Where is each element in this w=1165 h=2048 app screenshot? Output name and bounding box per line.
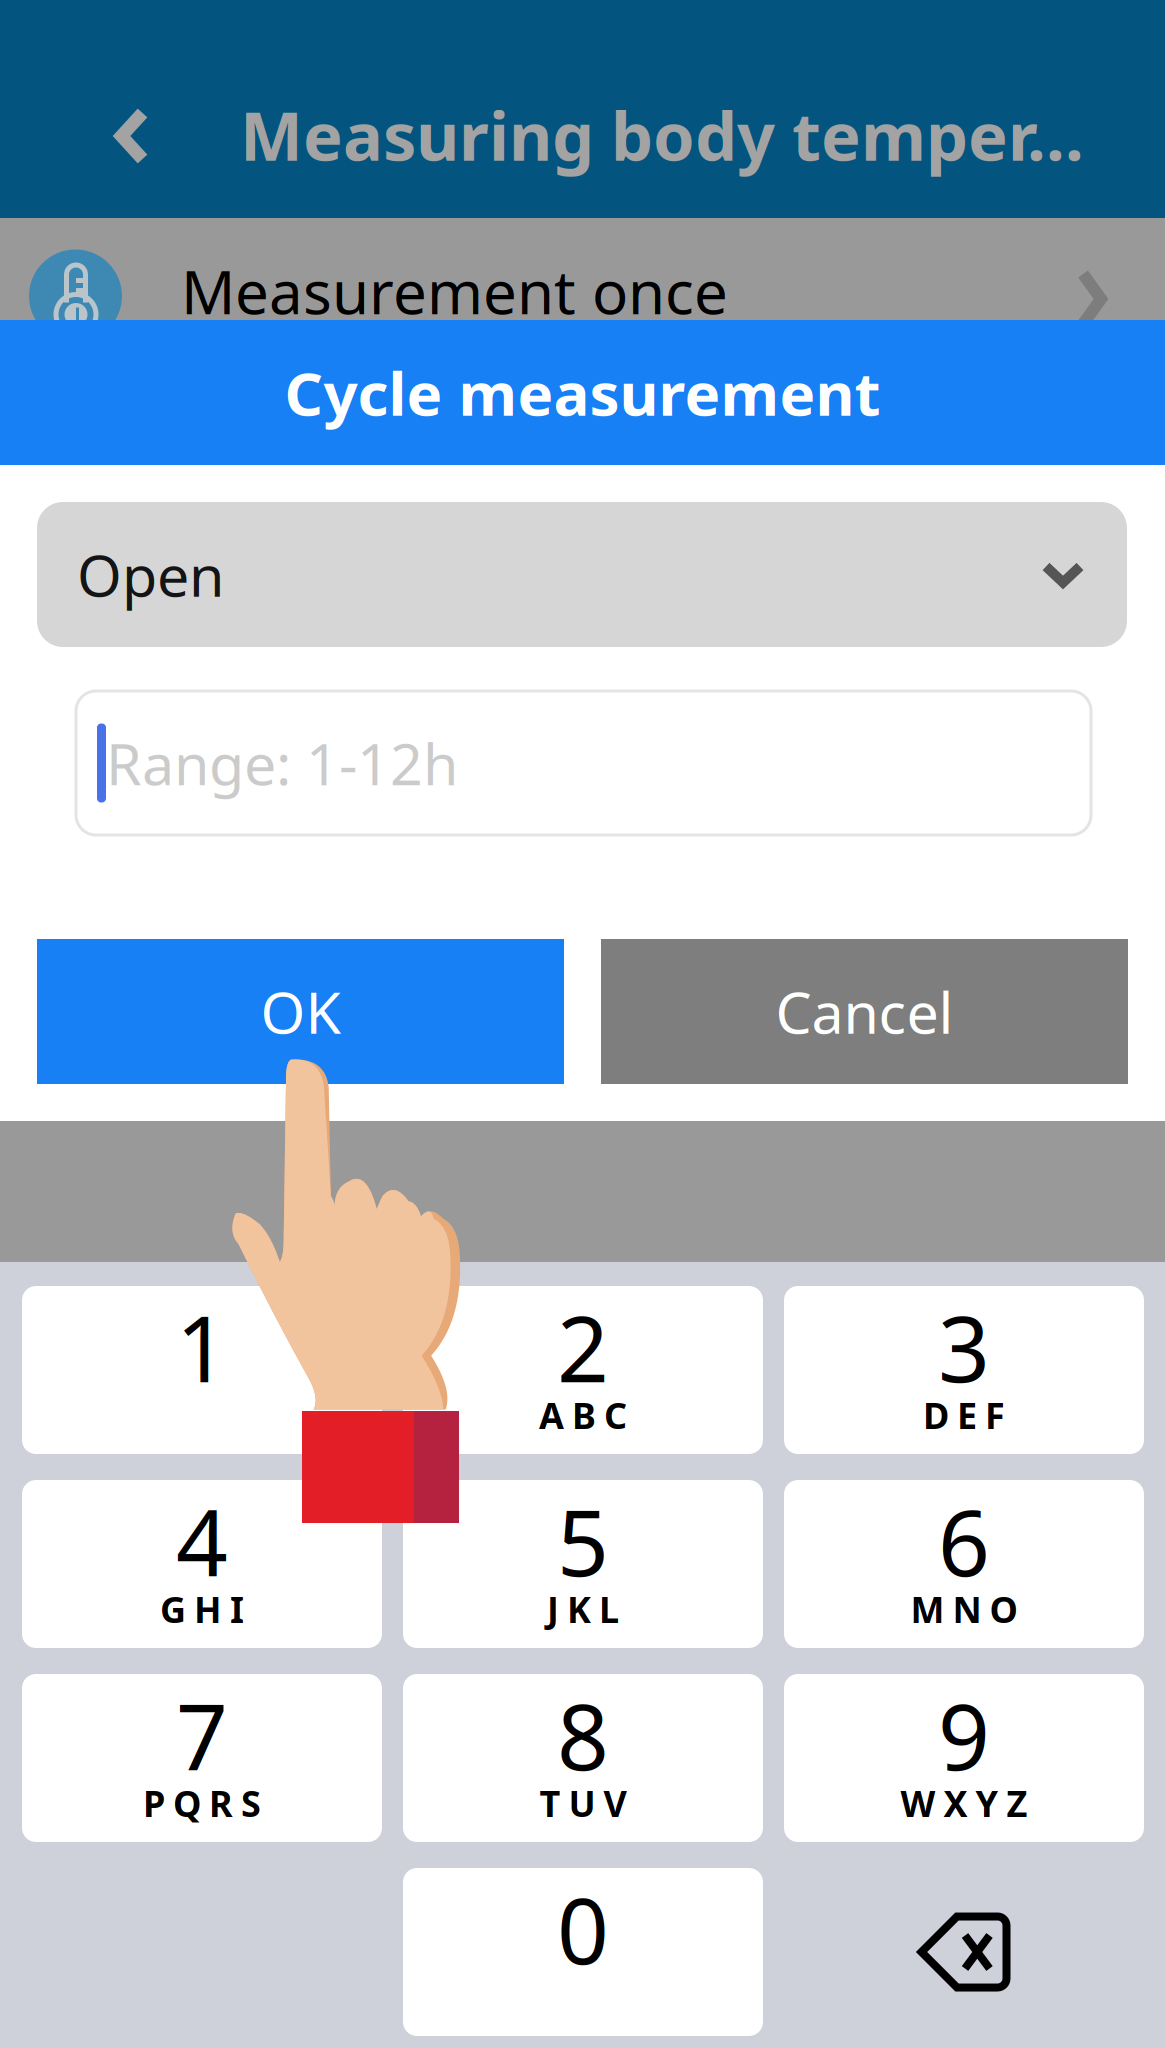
staticText: 4 bbox=[176, 1481, 228, 1601]
button[interactable]: Open bbox=[37, 502, 1127, 647]
staticText: GHI bbox=[160, 1585, 244, 1633]
button[interactable]: OK bbox=[37, 939, 564, 1084]
button[interactable]: 2 bbox=[403, 1286, 763, 1454]
staticText: MNO bbox=[910, 1585, 1017, 1633]
button[interactable]: 9 bbox=[784, 1674, 1144, 1842]
button[interactable]: Delete bbox=[784, 1868, 1144, 2036]
staticText: OK bbox=[260, 973, 340, 1049]
staticText: TUV bbox=[539, 1779, 626, 1827]
staticText: 9 bbox=[938, 1675, 990, 1795]
button[interactable]: Back bbox=[97, 86, 167, 186]
staticText: 0 bbox=[557, 1869, 609, 1989]
staticText: Measurement once bbox=[181, 251, 728, 331]
staticText: 8 bbox=[557, 1675, 609, 1795]
button[interactable]: 8 bbox=[403, 1674, 763, 1842]
button[interactable]: 4 bbox=[22, 1480, 382, 1648]
staticText: Measuring body temper... bbox=[240, 91, 1084, 179]
button[interactable]: 0 bbox=[403, 1868, 763, 2036]
staticText: Cancel bbox=[775, 973, 953, 1049]
button[interactable]: 1 bbox=[22, 1286, 382, 1454]
button[interactable]: Cancel bbox=[601, 939, 1128, 1084]
staticText: Open bbox=[77, 536, 224, 612]
button[interactable]: 5 bbox=[403, 1480, 763, 1648]
staticText: 6 bbox=[938, 1481, 990, 1601]
staticText: Cycle measurement bbox=[284, 353, 880, 432]
staticText: ABC bbox=[539, 1391, 627, 1439]
staticText: 7 bbox=[176, 1675, 228, 1795]
staticText: WXYZ bbox=[900, 1779, 1027, 1827]
button[interactable]: Measurement once bbox=[0, 218, 1165, 320]
staticText: 3 bbox=[938, 1287, 990, 1407]
staticText: DEF bbox=[923, 1391, 1005, 1439]
staticText: JKL bbox=[547, 1585, 619, 1633]
staticText: PQRS bbox=[143, 1779, 261, 1827]
staticText: Range: 1-12h bbox=[106, 725, 458, 801]
staticText: 1 bbox=[176, 1287, 228, 1407]
button[interactable]: 6 bbox=[784, 1480, 1144, 1648]
staticText: 2 bbox=[557, 1287, 609, 1407]
staticText: 5 bbox=[557, 1481, 609, 1601]
button[interactable]: 7 bbox=[22, 1674, 382, 1842]
button[interactable]: 3 bbox=[784, 1286, 1144, 1454]
